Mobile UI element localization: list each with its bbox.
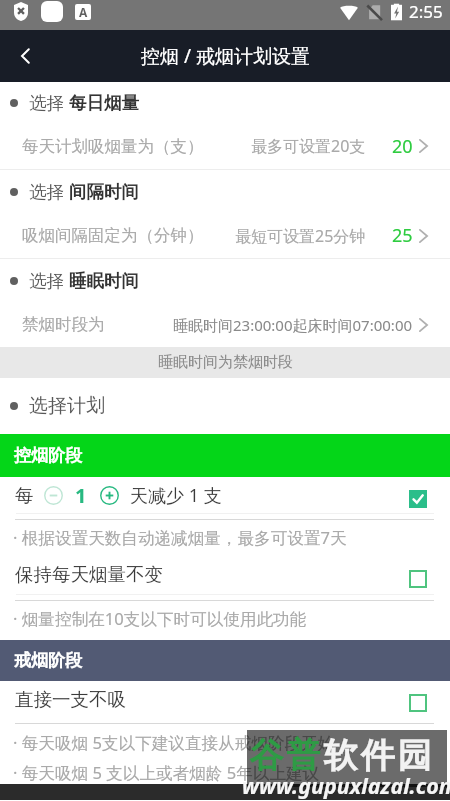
staticText: 睡眠时间23:00:00起床时间07:00:00 [173, 315, 413, 335]
button[interactable]: Selected option [403, 484, 433, 514]
staticText: A [79, 4, 88, 20]
staticText: 每 [15, 484, 34, 507]
staticText: 睡眠时间 [69, 270, 139, 292]
staticText: 控烟阶段 [14, 445, 82, 466]
staticText: 每天计划吸烟量为（支） [22, 136, 204, 157]
staticText: 选择计划 [29, 394, 105, 418]
staticText: 25 [392, 223, 413, 248]
staticText: · 根据设置天数自动递减烟量，最多可设置7天 [13, 526, 347, 549]
staticText: 戒烟阶段 [14, 650, 82, 671]
staticText: 天减少 1 支 [130, 483, 222, 508]
button[interactable]: Select option [403, 564, 433, 594]
button[interactable]: 每天计划吸烟量为（支） [0, 123, 450, 169]
staticText: 每日烟量 [69, 92, 139, 114]
staticText: 睡眠时间为禁烟时段 [158, 353, 293, 372]
button[interactable]: Back [0, 30, 52, 82]
staticText: 选择 [29, 92, 64, 114]
staticText: 2:55 [409, 0, 443, 23]
button[interactable]: 吸烟间隔固定为（分钟） [0, 213, 450, 258]
staticText: 保持每天烟量不变 [15, 563, 163, 586]
staticText: 控烟 / 戒烟计划设置 [141, 43, 310, 69]
staticText: · 每天吸烟 5 支以上或者烟龄 5年以上建议 [13, 761, 320, 784]
staticText: 间隔时间 [69, 181, 139, 203]
button[interactable]: 禁烟时段为 [0, 302, 450, 347]
staticText: 1 [75, 482, 87, 509]
staticText: · 烟量控制在10支以下时可以使用此功能 [13, 607, 307, 630]
staticText: 谷普 [248, 734, 322, 777]
button[interactable]: Increase [99, 485, 119, 505]
staticText: 最短可设置25分钟 [235, 225, 366, 247]
button[interactable]: Select option [403, 688, 433, 718]
staticText: · 每天吸烟 5支以下建议直接从戒烟阶段开始 [13, 731, 335, 754]
staticText: 软件园 [322, 734, 433, 777]
staticText: 吸烟间隔固定为（分钟） [22, 225, 204, 246]
staticText: 选择 [29, 270, 64, 292]
button[interactable]: Decrease [43, 485, 63, 505]
staticText: 20 [392, 134, 413, 159]
staticText: 选择 [29, 181, 64, 203]
staticText: 最多可设置20支 [251, 135, 366, 157]
staticText: www.gupuxlazal.com [242, 771, 450, 800]
staticText: 直接一支不吸 [15, 688, 126, 711]
staticText: 禁烟时段为 [22, 314, 105, 335]
